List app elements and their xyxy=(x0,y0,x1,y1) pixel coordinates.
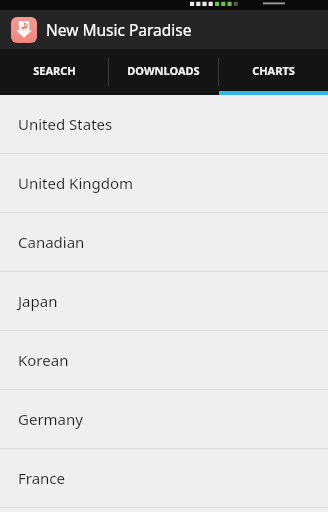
staticText: United States xyxy=(18,114,113,134)
button[interactable]: Canadian xyxy=(0,213,328,271)
button[interactable]: United States xyxy=(0,95,328,153)
button[interactable]: Japan xyxy=(0,272,328,330)
button[interactable]: France xyxy=(0,449,328,507)
staticText: Korean xyxy=(18,350,69,370)
button[interactable]: United Kingdom xyxy=(0,154,328,212)
staticText: New Music Paradise xyxy=(46,19,192,40)
staticText: Japan xyxy=(18,291,58,311)
staticText: France xyxy=(18,468,66,488)
staticText: SEARCH xyxy=(33,63,76,78)
button[interactable]: CHARTS xyxy=(219,49,328,95)
button[interactable]: SEARCH xyxy=(0,49,108,95)
button[interactable]: DOWNLOADS xyxy=(109,49,218,95)
staticText: United Kingdom xyxy=(18,173,134,193)
button[interactable]: Korean xyxy=(0,331,328,389)
staticText: Canadian xyxy=(18,232,85,252)
staticText: CHARTS xyxy=(252,63,295,78)
staticText: Germany xyxy=(18,409,83,429)
staticText: DOWNLOADS xyxy=(127,63,200,78)
button[interactable]: Germany xyxy=(0,390,328,448)
